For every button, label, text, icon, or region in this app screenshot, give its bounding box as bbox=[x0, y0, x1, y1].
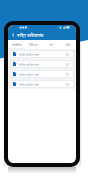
staticText: নথির ফাইল নাম bbox=[19, 62, 39, 67]
button[interactable]: পিডিএফ bbox=[25, 40, 42, 49]
staticText: ফাইল ডাউনলোড bbox=[17, 32, 44, 39]
button[interactable]: Back bbox=[8, 30, 17, 40]
button[interactable]: শব্দ bbox=[42, 40, 59, 49]
button[interactable]: নথির ফাইল নাম bbox=[10, 70, 74, 78]
staticText: নথির ফাইল নাম bbox=[19, 52, 39, 57]
staticText: নথির ফাইল নাম bbox=[19, 72, 39, 77]
button[interactable]: সাম্প্রতিক bbox=[8, 40, 25, 49]
button[interactable]: নথির ফাইল নাম bbox=[10, 80, 74, 88]
staticText: পিডিএফ bbox=[29, 43, 38, 46]
staticText: ছবি bbox=[66, 43, 70, 46]
button[interactable]: নথির ফাইল নাম bbox=[10, 60, 74, 68]
button[interactable]: ছবি bbox=[59, 40, 76, 49]
button[interactable]: নথির ফাইল নাম bbox=[10, 50, 74, 58]
staticText: শব্দ bbox=[49, 43, 53, 46]
staticText: নথির ফাইল নাম bbox=[19, 82, 39, 87]
staticText: সাম্প্রতিক bbox=[12, 43, 22, 46]
